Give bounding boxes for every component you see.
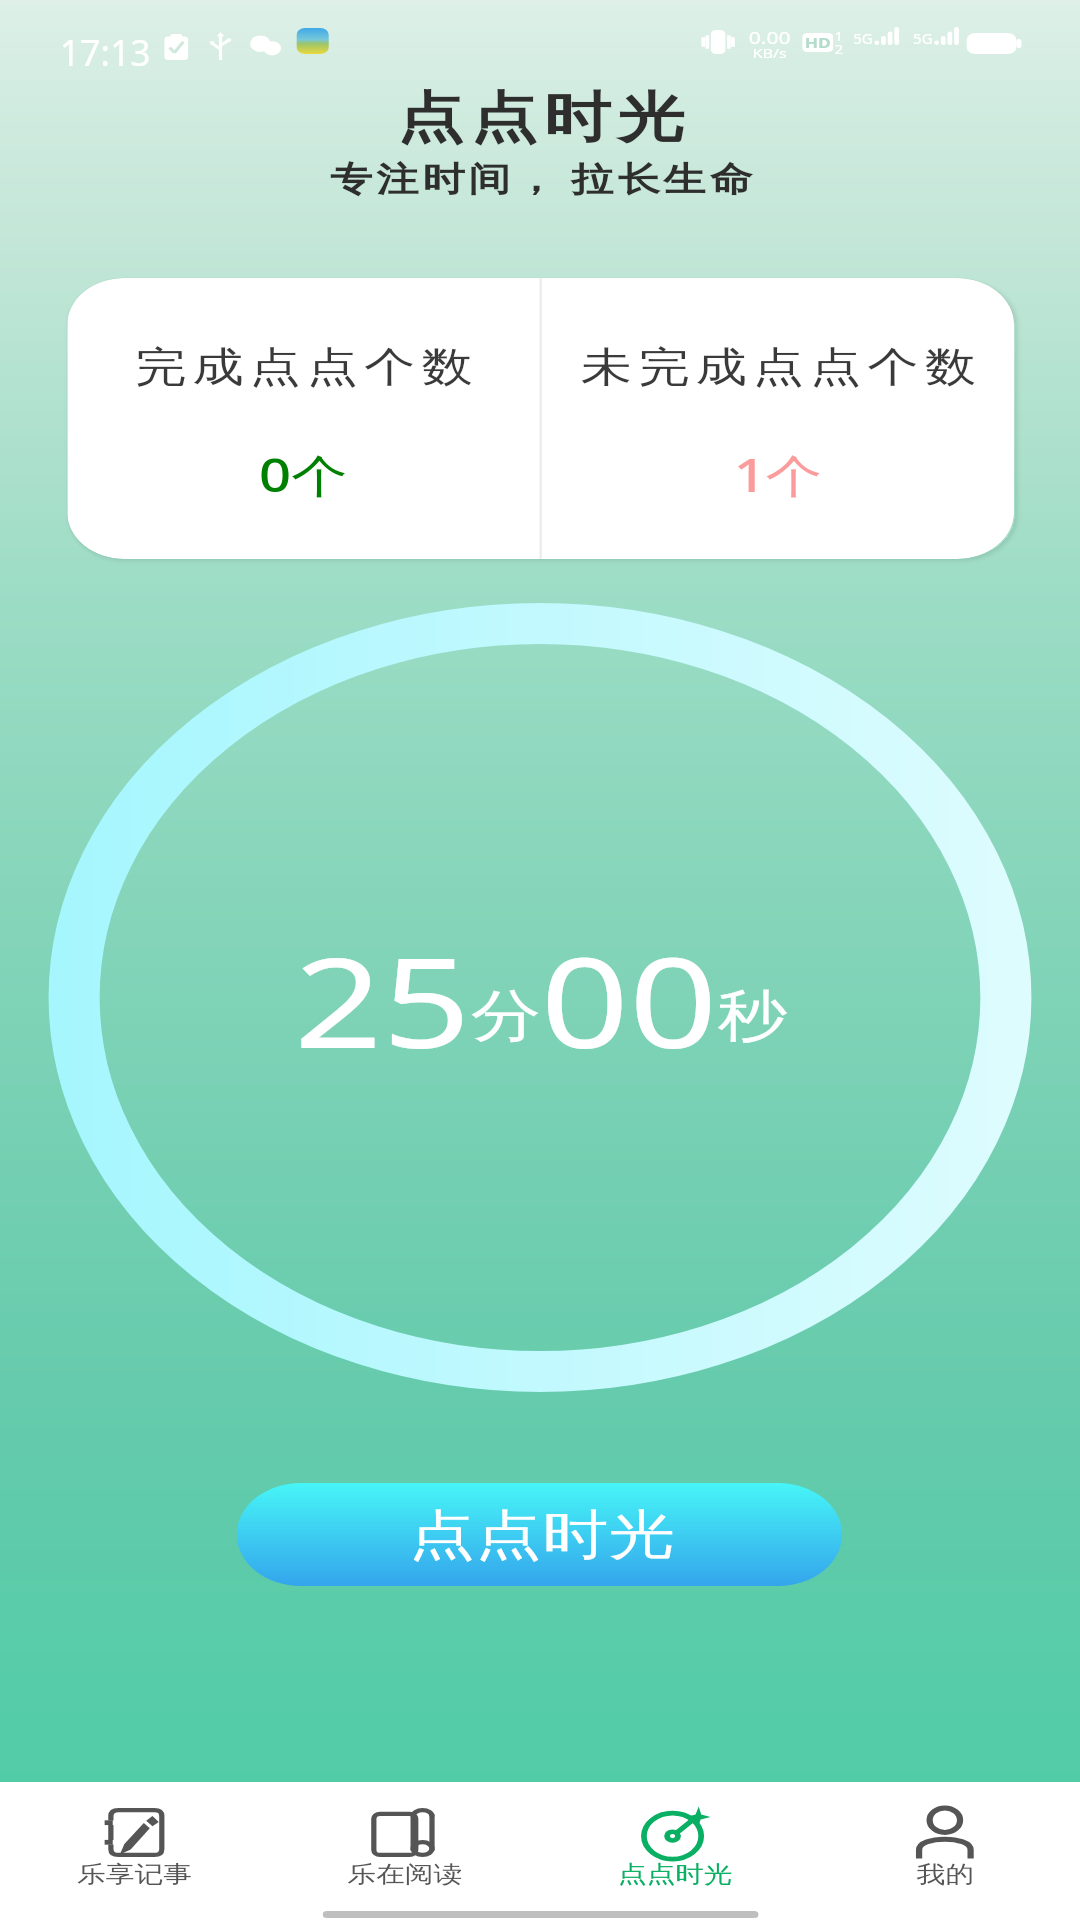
staticText: 我的: [917, 1860, 974, 1889]
button[interactable]: 我的: [810, 1782, 1080, 1918]
staticText: 乐享记事: [77, 1860, 192, 1889]
button[interactable]: 点点时光: [539, 1782, 810, 1918]
other: 点点时光: [641, 1808, 707, 1861]
button[interactable]: 未完成点点个数: [542, 278, 1014, 559]
staticText: 0个: [259, 444, 347, 505]
staticText: 25: [294, 915, 471, 1084]
staticText: 5G: [853, 28, 873, 48]
staticText: 点点时光: [394, 84, 688, 152]
staticText: 乐在阅读: [347, 1860, 462, 1889]
staticText: 未完成点点个数: [578, 342, 979, 394]
button[interactable]: 完成点点个数: [67, 278, 539, 559]
staticText: 专注时间， 拉长生命: [330, 155, 756, 201]
button[interactable]: 乐享记事: [0, 1782, 269, 1918]
other: 我的: [916, 1808, 974, 1861]
staticText: 点点时光: [409, 1502, 675, 1569]
staticText: 00: [541, 915, 717, 1084]
staticText: 1个: [734, 444, 822, 505]
staticText: 2: [835, 41, 843, 57]
button[interactable]: 点点时光: [237, 1483, 842, 1586]
other: 乐享记事: [105, 1808, 164, 1857]
staticText: 17:13: [60, 26, 151, 76]
staticText: HD: [805, 33, 831, 52]
staticText: 完成点点个数: [132, 342, 476, 394]
staticText: KB/s: [752, 44, 787, 62]
staticText: 0.00: [749, 26, 791, 49]
other: 乐在阅读: [371, 1808, 437, 1857]
staticText: 点点时光: [618, 1860, 732, 1889]
staticText: 1: [835, 28, 843, 44]
staticText: 秒: [717, 981, 787, 1052]
staticText: 5G: [913, 28, 933, 48]
button[interactable]: 乐在阅读: [269, 1782, 539, 1918]
staticText: 分: [471, 981, 541, 1052]
